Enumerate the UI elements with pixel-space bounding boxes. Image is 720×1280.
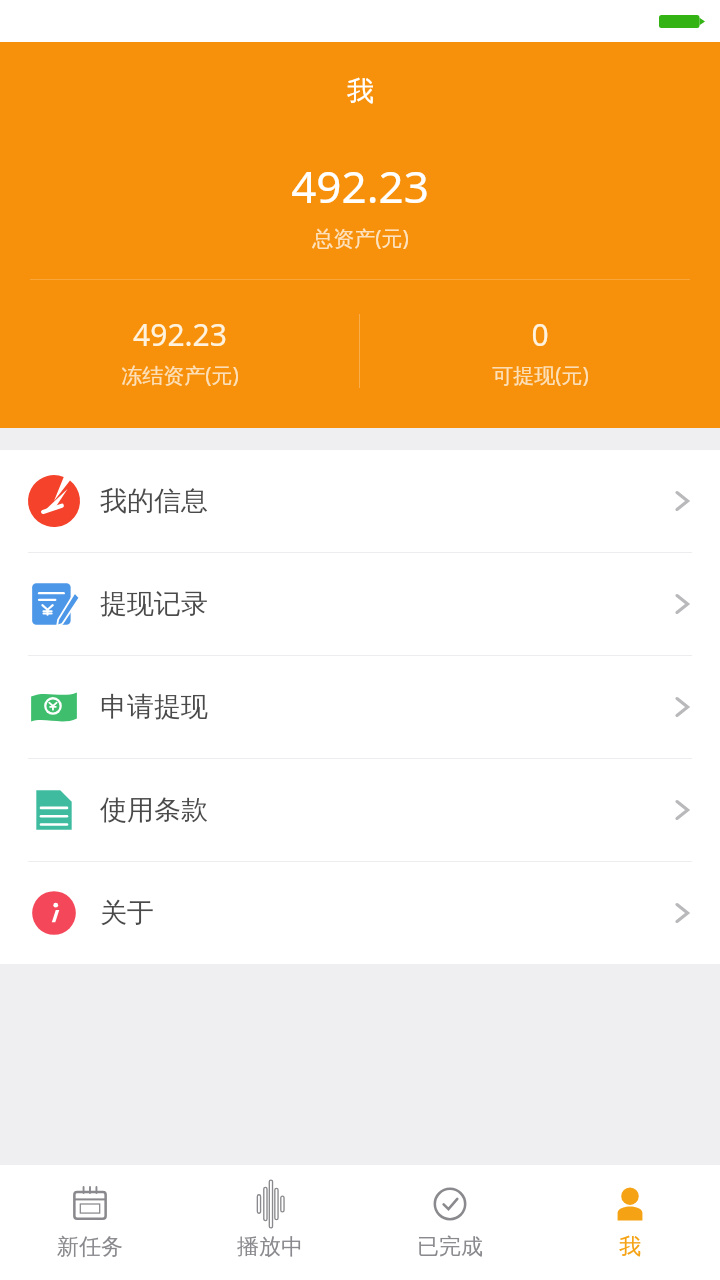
staticText: 冻结资产(元) <box>121 361 239 390</box>
button[interactable]: 新任务 <box>0 1165 180 1280</box>
button[interactable]: 已完成 <box>360 1165 540 1280</box>
staticText: 播放中 <box>237 1233 303 1261</box>
button[interactable]: 使用条款 <box>0 759 720 861</box>
button[interactable]: 我 <box>540 1165 720 1280</box>
button[interactable]: 关于 <box>0 862 720 964</box>
staticText: 总资产(元) <box>312 224 409 253</box>
staticText: 我 <box>619 1233 641 1261</box>
staticText: 可提现(元) <box>492 361 589 390</box>
button[interactable]: 申请提现 <box>0 656 720 758</box>
staticText: 已完成 <box>417 1233 483 1261</box>
button[interactable]: 提现记录 <box>0 553 720 655</box>
staticText: 提现记录 <box>100 587 208 621</box>
staticText: 492.23 <box>291 156 429 216</box>
staticText: 我 <box>347 74 374 108</box>
staticText: 关于 <box>100 896 154 930</box>
staticText: 492.23 <box>133 314 227 355</box>
button[interactable]: 退出登录 <box>32 1188 688 1280</box>
staticText: 我的信息 <box>100 484 208 518</box>
staticText: 使用条款 <box>100 793 208 827</box>
staticText: 申请提现 <box>100 690 208 724</box>
button[interactable]: 播放中 <box>180 1165 360 1280</box>
button[interactable]: 我的信息 <box>0 450 720 552</box>
staticText: 0 <box>531 314 549 355</box>
staticText: 新任务 <box>57 1233 123 1261</box>
